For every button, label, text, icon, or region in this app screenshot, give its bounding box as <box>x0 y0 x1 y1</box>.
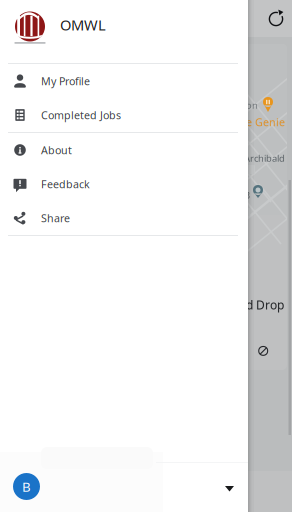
staticText: OMWL <box>60 15 106 34</box>
staticText: Completed Jobs <box>41 108 121 122</box>
button[interactable]: My Profile <box>0 64 248 98</box>
staticText: My Profile <box>41 74 90 88</box>
button[interactable]: About <box>0 133 248 167</box>
button[interactable]: Completed Jobs <box>0 98 248 132</box>
staticText: About <box>41 143 72 157</box>
button[interactable]: Account <box>13 473 40 500</box>
staticText: d Drop <box>246 297 284 313</box>
staticText: B <box>244 189 250 201</box>
button[interactable]: Show options <box>219 480 240 498</box>
button[interactable]: Share <box>0 201 248 235</box>
staticText: ion <box>244 99 258 111</box>
button[interactable]: Feedback <box>0 167 248 201</box>
button[interactable]: Refresh <box>264 6 288 32</box>
staticText: Archibald Ave <box>244 152 292 164</box>
staticText: Feedback <box>41 177 90 191</box>
staticText: Share <box>41 211 70 225</box>
button[interactable]: OMWL <box>0 0 248 63</box>
staticText: ake Genie <box>234 115 285 129</box>
staticText: B <box>22 478 31 495</box>
